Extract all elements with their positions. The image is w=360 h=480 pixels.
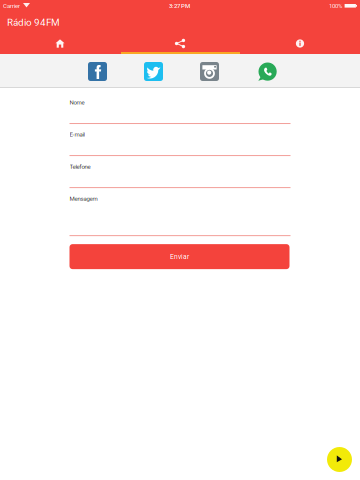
staticText: 3:27 PM bbox=[169, 2, 190, 9]
staticText: Carrier bbox=[3, 2, 20, 9]
staticText: 100% bbox=[329, 2, 342, 9]
button[interactable]: Home bbox=[0, 33, 120, 54]
staticText: Nome bbox=[69, 99, 84, 106]
button[interactable]: Enviar bbox=[69, 244, 289, 269]
staticText: Mensagem bbox=[69, 195, 97, 202]
button[interactable]: WhatsApp bbox=[258, 62, 277, 81]
button[interactable]: Info bbox=[240, 33, 360, 54]
staticText: Rádio 94FM bbox=[7, 17, 60, 28]
button[interactable]: Share bbox=[120, 33, 240, 54]
button[interactable]: Instagram bbox=[200, 62, 219, 81]
button[interactable]: Play bbox=[327, 447, 352, 472]
button[interactable]: Twitter bbox=[144, 62, 163, 81]
staticText: Enviar bbox=[170, 253, 189, 260]
button[interactable]: Facebook bbox=[88, 62, 107, 81]
staticText: Telefone bbox=[69, 163, 90, 170]
staticText: E-mail bbox=[69, 131, 84, 138]
